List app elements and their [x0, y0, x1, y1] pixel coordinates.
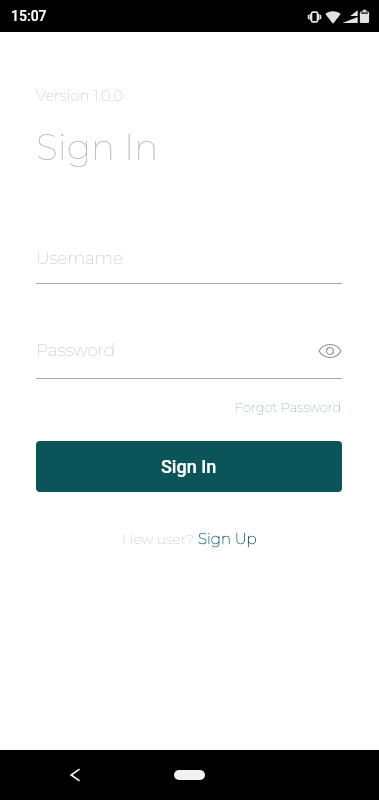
- staticText: Sign In: [36, 125, 159, 169]
- staticText: Sign In: [161, 456, 217, 477]
- button[interactable]: Sign In: [36, 441, 342, 492]
- staticText: Version 1.0.0: [36, 86, 124, 104]
- staticText: Sign Up: [198, 529, 257, 547]
- staticText: 15:07: [11, 8, 47, 24]
- staticText: Forgot Password: [235, 399, 342, 415]
- staticText: Password: [36, 340, 116, 361]
- button[interactable]: Sign Up: [198, 529, 257, 547]
- staticText: Username: [36, 248, 123, 269]
- button[interactable]: Forgot Password: [235, 399, 342, 415]
- button[interactable]: Back: [62, 762, 88, 788]
- staticText: New user?: [122, 530, 198, 547]
- button[interactable]: Home: [174, 770, 205, 780]
- button[interactable]: Show password: [318, 339, 342, 363]
